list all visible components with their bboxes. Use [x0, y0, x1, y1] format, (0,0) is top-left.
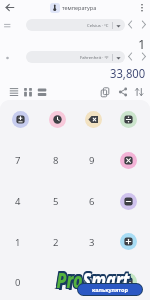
staticText: 9 — [89, 154, 95, 167]
staticText: ProSmart — [56, 264, 130, 291]
button[interactable] — [36, 86, 48, 98]
button[interactable] — [133, 86, 145, 98]
button[interactable] — [117, 86, 129, 98]
button[interactable] — [137, 2, 147, 14]
button[interactable]: 1 — [8, 235, 28, 249]
staticText: 1 — [138, 35, 146, 50]
button[interactable]: . — [45, 278, 65, 292]
button[interactable] — [22, 86, 34, 98]
staticText: Fahrenheit · °F — [80, 55, 109, 61]
staticText: 33,800 — [110, 65, 146, 80]
button[interactable]: 3 — [82, 235, 102, 249]
staticText: 2 — [53, 236, 59, 249]
button[interactable] — [125, 19, 135, 30]
staticText: ProSmart — [57, 266, 131, 294]
staticText: температура — [62, 4, 97, 11]
button[interactable]: 4 — [8, 194, 28, 208]
button[interactable] — [99, 86, 111, 98]
button[interactable]: 5 — [46, 194, 66, 208]
button[interactable] — [8, 86, 20, 98]
staticText: 6 — [89, 195, 95, 208]
button[interactable]: 8 — [46, 153, 66, 167]
button[interactable]: Celsius · °C — [26, 19, 125, 31]
button[interactable] — [120, 152, 137, 169]
button[interactable] — [139, 19, 149, 30]
staticText: ProSmart — [59, 268, 132, 295]
staticText: ProSmart — [55, 265, 129, 293]
staticText: ProSmart — [55, 264, 129, 291]
button[interactable] — [139, 51, 149, 62]
staticText: 3 — [89, 236, 95, 249]
button[interactable] — [120, 273, 137, 290]
staticText: ProSmart — [55, 266, 129, 294]
staticText: 5 — [53, 195, 59, 208]
button[interactable] — [120, 193, 137, 210]
staticText: ProSmart — [57, 265, 131, 293]
staticText: 4 — [15, 195, 21, 208]
button[interactable] — [120, 111, 137, 128]
button[interactable] — [85, 111, 102, 128]
button[interactable]: 6 — [82, 194, 102, 208]
button[interactable]: 0 — [8, 275, 28, 289]
staticText: 8 — [53, 154, 59, 167]
staticText: ProSmart — [56, 265, 130, 293]
staticText: Celsius · °C — [87, 23, 109, 29]
button[interactable] — [49, 111, 66, 128]
staticText: . — [54, 279, 57, 292]
button[interactable] — [120, 233, 137, 250]
staticText: ProSmart — [59, 268, 132, 295]
staticText: 1 — [15, 236, 21, 249]
staticText: 7 — [15, 154, 21, 167]
button[interactable]: 2 — [46, 235, 66, 249]
button[interactable] — [3, 2, 17, 14]
button[interactable] — [12, 111, 29, 128]
button[interactable] — [125, 51, 135, 62]
staticText: ProSmart — [57, 264, 131, 291]
staticText: ProSmart — [56, 266, 130, 294]
button[interactable]: 7 — [8, 153, 28, 167]
staticText: калькулятор — [92, 286, 128, 293]
button[interactable]: Fahrenheit · °F — [26, 51, 125, 63]
staticText: 0 — [15, 276, 21, 289]
button[interactable]: 9 — [82, 153, 102, 167]
